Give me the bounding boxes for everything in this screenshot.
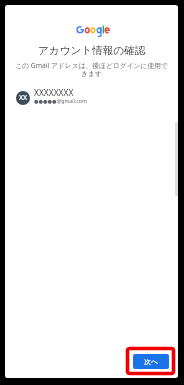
staticText: アカウント情報の確認 <box>38 44 146 57</box>
staticText: ●●●●●@gmail.com <box>34 97 87 104</box>
staticText: この Gmail アドレスは、後ほどログインに使用で きます <box>5 61 178 78</box>
staticText: XX <box>19 93 28 103</box>
button[interactable]: 次へ <box>133 354 169 369</box>
staticText: XXXXXXXX <box>34 87 74 98</box>
button[interactable]: XX <box>16 89 156 109</box>
staticText: 次へ <box>144 357 159 366</box>
